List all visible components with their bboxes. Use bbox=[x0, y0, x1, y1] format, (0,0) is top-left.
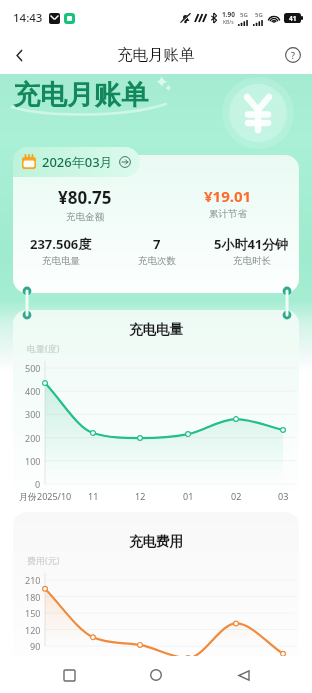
staticText: 0 bbox=[35, 478, 41, 490]
staticText: 1.90 bbox=[222, 10, 235, 19]
staticText: 120 bbox=[25, 624, 41, 636]
staticText: 01 bbox=[183, 490, 194, 502]
staticText: 充电电量 bbox=[13, 321, 299, 338]
staticText: 237.506度 bbox=[30, 235, 92, 253]
staticText: 月份2025/10 bbox=[19, 490, 72, 502]
button[interactable]: 2026年03月 bbox=[13, 147, 140, 177]
staticText: 2026年03月 bbox=[42, 153, 113, 171]
staticText: 充电电量 bbox=[42, 255, 80, 267]
staticText: 400 bbox=[25, 385, 41, 397]
button[interactable]: Home bbox=[138, 657, 174, 693]
staticText: 14:43 bbox=[13, 10, 43, 26]
staticText: 充电费用 bbox=[13, 533, 299, 550]
staticText: 180 bbox=[25, 591, 41, 603]
staticText: 210 bbox=[25, 574, 41, 586]
staticText: 充电金额 bbox=[66, 211, 104, 223]
staticText: ¥80.75 bbox=[58, 186, 112, 209]
staticText: 充电月账单 bbox=[117, 45, 195, 65]
staticText: 7 bbox=[153, 235, 161, 253]
staticText: 11 bbox=[88, 490, 99, 502]
staticText: 500 bbox=[25, 362, 41, 374]
staticText: ¥19.01 bbox=[204, 186, 252, 206]
staticText: 5G bbox=[240, 11, 248, 19]
button[interactable]: Recents bbox=[51, 657, 87, 693]
staticText: 充电次数 bbox=[138, 255, 176, 267]
staticText: 02 bbox=[231, 490, 242, 502]
staticText: 5G bbox=[255, 11, 263, 19]
staticText: 150 bbox=[25, 607, 41, 619]
button[interactable]: Help bbox=[274, 36, 312, 74]
staticText: 累计节省 bbox=[209, 208, 247, 220]
staticText: ? bbox=[291, 49, 296, 61]
staticText: 费用(元) bbox=[27, 554, 60, 566]
staticText: 100 bbox=[25, 455, 41, 467]
staticText: 90 bbox=[30, 640, 41, 652]
staticText: 充电月账单 bbox=[13, 78, 148, 112]
staticText: 200 bbox=[25, 432, 41, 444]
staticText: 12 bbox=[135, 490, 146, 502]
button[interactable]: Back bbox=[0, 36, 38, 74]
staticText: 03 bbox=[278, 490, 289, 502]
button[interactable]: Back bbox=[225, 657, 261, 693]
staticText: 充电时长 bbox=[233, 255, 271, 267]
staticText: KB/s bbox=[223, 19, 234, 26]
staticText: 41 bbox=[289, 14, 297, 23]
staticText: 电量(度) bbox=[27, 342, 60, 354]
staticText: 5小时41分钟 bbox=[214, 235, 289, 253]
staticText: 300 bbox=[25, 408, 41, 420]
